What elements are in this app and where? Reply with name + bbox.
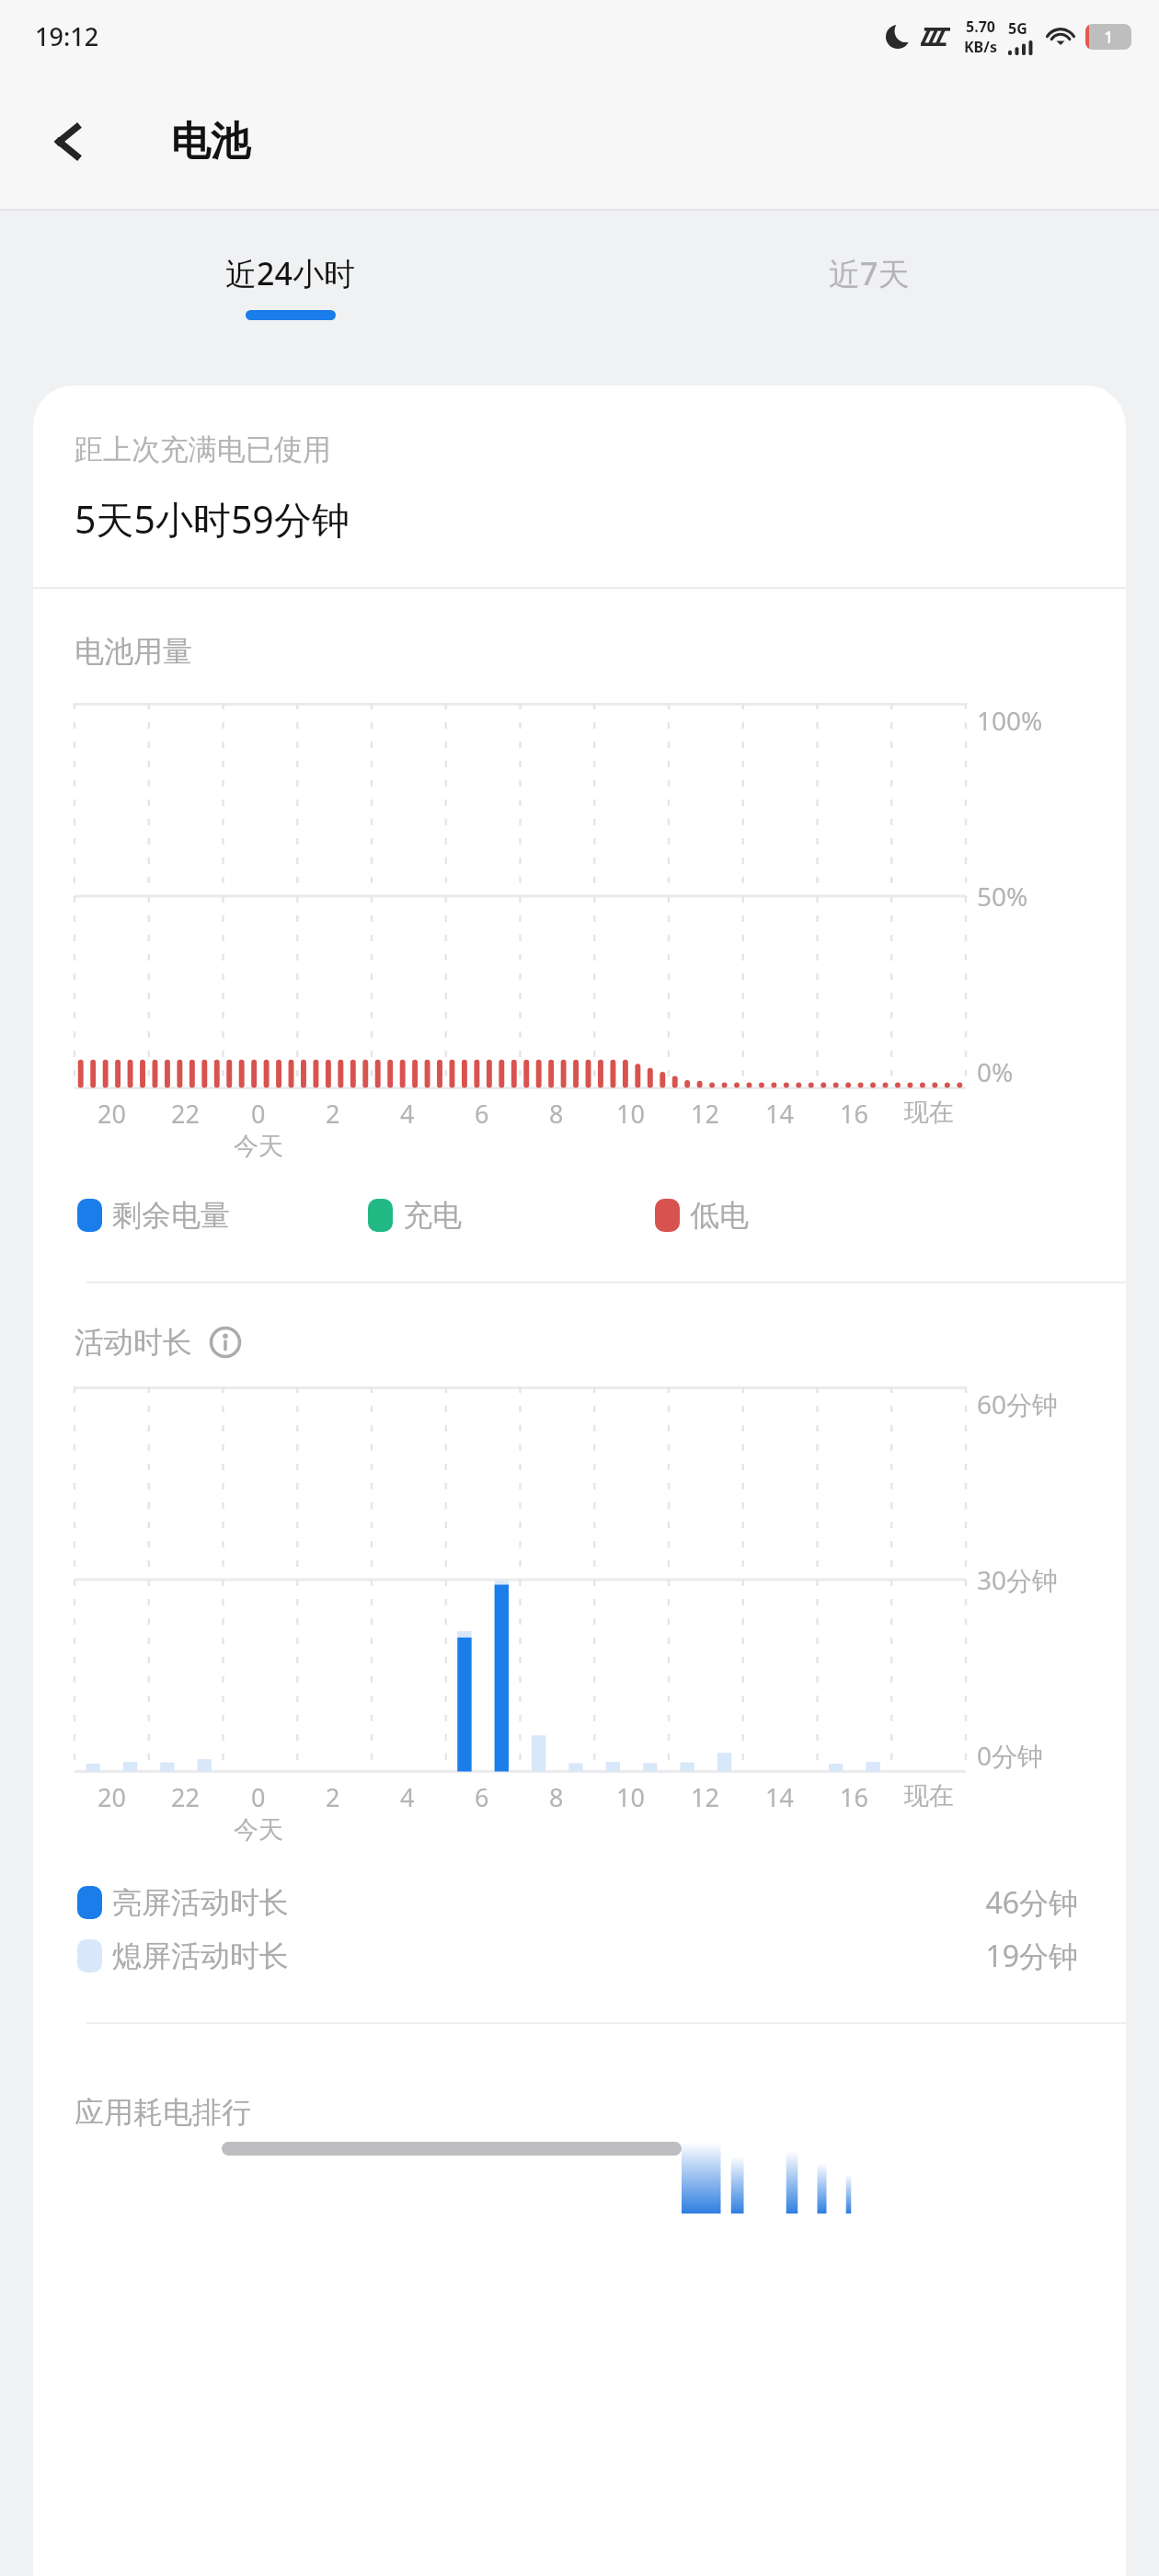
staticText: 电池用量 bbox=[75, 633, 192, 670]
staticText: 10 bbox=[616, 1780, 645, 1814]
staticText: 今天 bbox=[234, 1131, 283, 1162]
staticText: 2 bbox=[326, 1780, 340, 1814]
staticText: 5天5小时59分钟 bbox=[75, 493, 350, 545]
staticText: 电池 bbox=[171, 117, 250, 167]
staticText: 8 bbox=[549, 1780, 564, 1814]
staticText: 1 bbox=[1104, 26, 1114, 49]
staticText: 应用耗电排行 bbox=[75, 2094, 251, 2131]
staticText: 12 bbox=[691, 1780, 719, 1814]
staticText: 距上次充满电已使用 bbox=[75, 431, 331, 467]
staticText: 20 bbox=[98, 1780, 126, 1814]
staticText: 今天 bbox=[234, 1814, 283, 1846]
staticText: 22 bbox=[171, 1097, 200, 1131]
staticText: 充电 bbox=[403, 1197, 462, 1234]
staticText: 10 bbox=[616, 1097, 645, 1131]
staticText: 4 bbox=[400, 1097, 415, 1131]
staticText: 60分钟 bbox=[977, 1386, 1059, 1421]
staticText: 亮屏活动时长 bbox=[112, 1884, 289, 1921]
staticText: 活动时长 bbox=[75, 1324, 192, 1361]
staticText: 6 bbox=[475, 1780, 489, 1814]
button[interactable]: 近7天 bbox=[579, 211, 1159, 361]
staticText: 5.70 bbox=[966, 17, 995, 37]
staticText: 剩余电量 bbox=[112, 1197, 230, 1234]
staticText: 低电 bbox=[690, 1197, 749, 1234]
staticText: 19:12 bbox=[35, 19, 99, 53]
staticText: 46分钟 bbox=[985, 1882, 1078, 1923]
staticText: 现在 bbox=[904, 1780, 954, 1811]
staticText: 16 bbox=[840, 1780, 868, 1814]
staticText: 100% bbox=[977, 703, 1043, 738]
staticText: 50% bbox=[977, 879, 1028, 914]
staticText: 16 bbox=[840, 1097, 868, 1131]
staticText: 近24小时 bbox=[225, 252, 355, 294]
staticText: 2 bbox=[326, 1097, 340, 1131]
staticText: 0 bbox=[251, 1780, 266, 1814]
staticText: 熄屏活动时长 bbox=[112, 1938, 289, 1974]
staticText: 0 bbox=[251, 1097, 266, 1131]
staticText: KB/s bbox=[964, 37, 997, 57]
staticText: 5G bbox=[1008, 18, 1027, 39]
staticText: 0分钟 bbox=[977, 1738, 1044, 1773]
staticText: 20 bbox=[98, 1097, 126, 1131]
staticText: 8 bbox=[549, 1097, 564, 1131]
button[interactable]: 应用耗电排行 bbox=[33, 2094, 1126, 2214]
staticText: 近7天 bbox=[829, 252, 910, 294]
button[interactable]: Back bbox=[40, 113, 98, 170]
staticText: 22 bbox=[171, 1780, 200, 1814]
staticText: 现在 bbox=[904, 1097, 954, 1128]
staticText: 4 bbox=[400, 1780, 415, 1814]
button[interactable]: Info bbox=[207, 1324, 244, 1361]
staticText: 19分钟 bbox=[985, 1936, 1078, 1976]
staticText: 0% bbox=[977, 1054, 1014, 1089]
button[interactable]: 近24小时 bbox=[0, 211, 579, 361]
staticText: 12 bbox=[691, 1097, 719, 1131]
staticText: 30分钟 bbox=[977, 1562, 1059, 1597]
staticText: 14 bbox=[765, 1097, 794, 1131]
staticText: 6 bbox=[475, 1097, 489, 1131]
staticText: 14 bbox=[765, 1780, 794, 1814]
